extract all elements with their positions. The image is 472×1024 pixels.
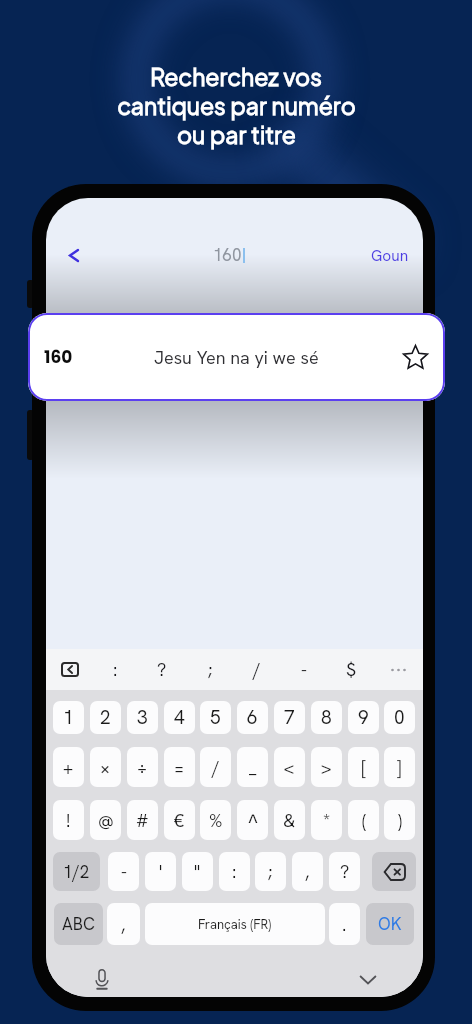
staticText: : [113, 658, 118, 681]
staticText: . [342, 913, 347, 936]
button[interactable]: Goun [371, 245, 409, 265]
staticText: _ [249, 756, 257, 779]
other: Backspace [384, 864, 405, 880]
button[interactable]: Back [54, 235, 94, 275]
button[interactable]: - [108, 852, 139, 891]
button[interactable]: $ [334, 649, 368, 690]
button[interactable]: ' [145, 852, 176, 891]
button[interactable]: ABC [54, 903, 103, 945]
staticText: ' [159, 860, 163, 883]
button[interactable]: = [164, 747, 195, 787]
staticText: 9 [358, 705, 369, 730]
button[interactable]: * [311, 800, 342, 840]
staticText: ? [340, 860, 350, 883]
button[interactable]: [ [348, 747, 379, 787]
button[interactable]: ! [53, 800, 84, 840]
button[interactable]: ) [384, 800, 415, 840]
button[interactable]: ÷ [127, 747, 158, 787]
button[interactable]: # [127, 800, 158, 840]
button[interactable]: ? [145, 649, 179, 690]
button[interactable]: ( [348, 800, 379, 840]
staticText: ) [398, 809, 402, 832]
button[interactable]: € [164, 800, 195, 840]
button[interactable]: ? [329, 852, 360, 891]
staticText: 5 [210, 705, 221, 730]
staticText: Goun [371, 245, 409, 265]
button[interactable]: 8 [311, 701, 342, 734]
staticText: ; [268, 860, 273, 883]
button[interactable]: , [292, 852, 323, 891]
staticText: < [284, 756, 295, 779]
button[interactable]: % [200, 800, 231, 840]
button[interactable]: 2 [90, 701, 121, 734]
button[interactable]: ^ [237, 800, 268, 840]
button[interactable]: / [200, 747, 231, 787]
staticText: 3 [137, 705, 148, 730]
staticText: ] [397, 756, 402, 779]
staticText: > [321, 756, 332, 779]
staticText: # [136, 809, 149, 832]
staticText: + [63, 756, 74, 779]
button[interactable]: . [329, 903, 360, 945]
button[interactable]: Hide keyboard [352, 963, 384, 995]
staticText: = [174, 756, 185, 779]
button[interactable]: 1/2 [53, 852, 100, 891]
button[interactable]: ; [193, 649, 227, 690]
button[interactable]: 3 [127, 701, 158, 734]
button[interactable]: : [98, 649, 132, 690]
staticText: , [305, 860, 310, 883]
staticText: 6 [247, 705, 258, 730]
staticText: @ [98, 809, 114, 832]
button[interactable]: / [240, 649, 274, 690]
button[interactable]: @ [90, 800, 121, 840]
staticText: 1 [63, 705, 74, 730]
staticText: [ [361, 756, 366, 779]
button[interactable]: & [274, 800, 305, 840]
staticText: ou par titre [177, 120, 296, 149]
button[interactable]: < [274, 747, 305, 787]
button[interactable]: : [219, 852, 250, 891]
button[interactable]: 160 [28, 313, 445, 401]
button[interactable]: _ [237, 747, 268, 787]
staticText: : [232, 860, 237, 883]
staticText: ? [157, 658, 167, 681]
button[interactable]: 9 [348, 701, 379, 734]
staticText: 160 [213, 244, 242, 266]
staticText: × [100, 756, 111, 779]
staticText: 2 [100, 705, 111, 730]
button[interactable]: × [90, 747, 121, 787]
staticText: $ [346, 658, 357, 681]
button[interactable]: 0 [384, 701, 415, 734]
button[interactable]: Backspace [372, 852, 416, 891]
staticText: Jesu Yen na yi we sé [154, 346, 319, 369]
button[interactable]: Voice input [86, 963, 118, 995]
button[interactable]: 4 [164, 701, 195, 734]
button[interactable]: 7 [274, 701, 305, 734]
staticText: 8 [321, 705, 332, 730]
staticText: - [121, 860, 127, 883]
staticText: 0 [394, 705, 405, 730]
button[interactable]: More [381, 649, 415, 690]
staticText: / [253, 658, 261, 681]
button[interactable]: 6 [237, 701, 268, 734]
staticText: ! [66, 809, 71, 832]
button[interactable]: ; [255, 852, 286, 891]
staticText: , [121, 913, 126, 936]
staticText: / [212, 756, 220, 779]
staticText: ÷ [137, 756, 148, 779]
staticText: cantiques par numéro [117, 91, 356, 120]
staticText: Français (FR) [198, 916, 272, 933]
button[interactable]: , [107, 903, 140, 945]
button[interactable]: ] [384, 747, 415, 787]
button[interactable]: 5 [200, 701, 231, 734]
button[interactable]: > [311, 747, 342, 787]
button[interactable]: - [287, 649, 321, 690]
button[interactable]: OK [366, 903, 414, 945]
button[interactable]: + [53, 747, 84, 787]
button[interactable]: Delete [61, 662, 79, 677]
button[interactable]: Français (FR) [145, 903, 325, 945]
button[interactable]: " [182, 852, 213, 891]
staticText: OK [378, 913, 402, 935]
staticText: % [209, 809, 223, 832]
button[interactable]: 1 [53, 701, 84, 734]
